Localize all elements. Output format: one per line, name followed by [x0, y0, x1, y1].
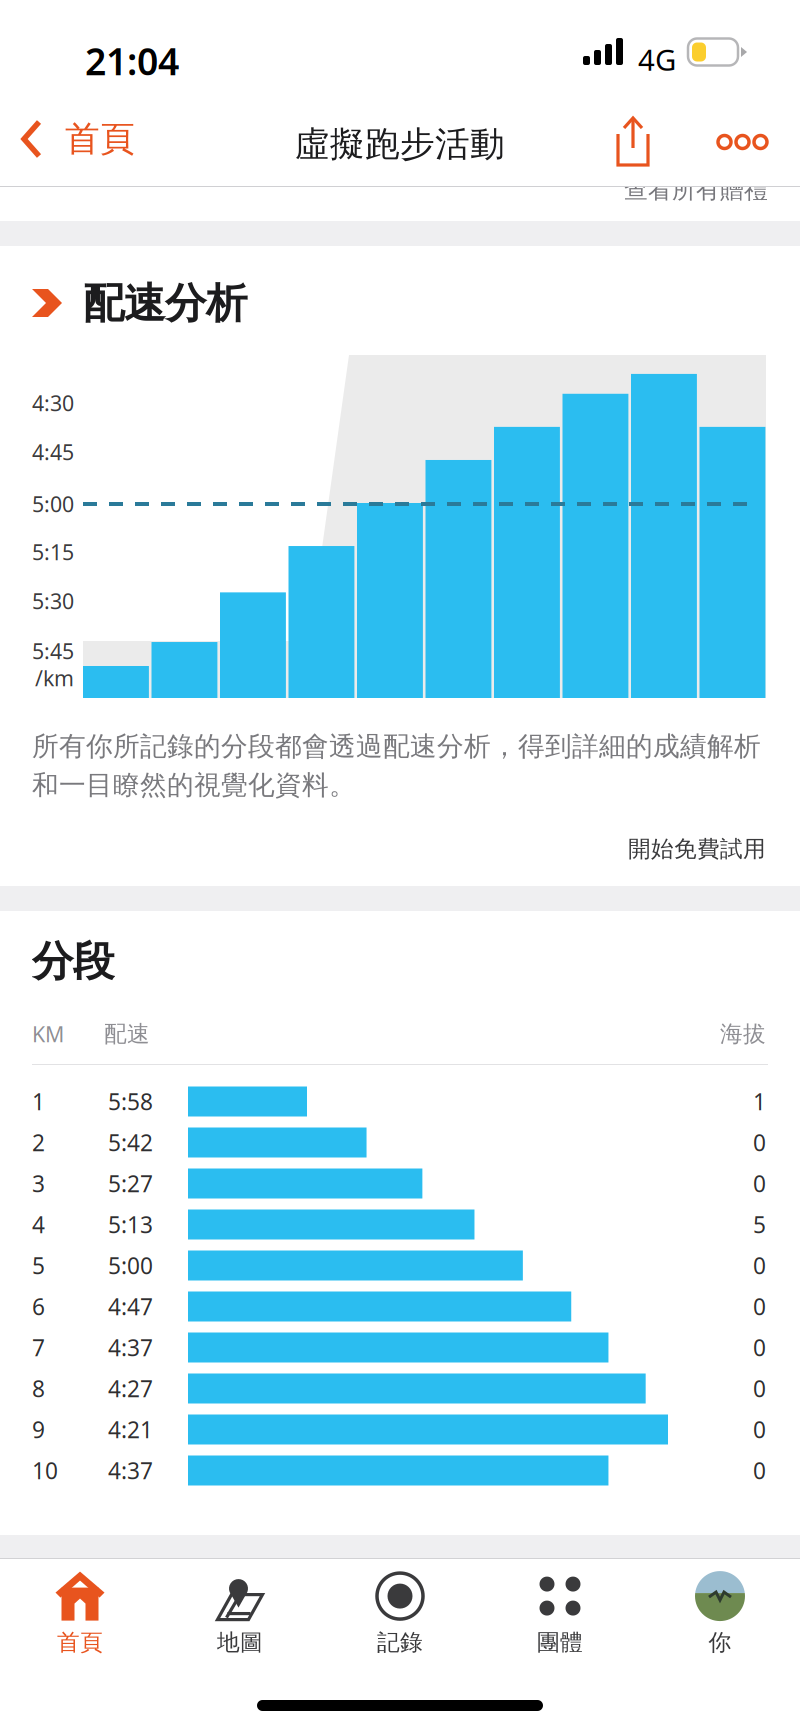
staticText: 5:27: [108, 1168, 153, 1198]
button[interactable]: 分享: [593, 99, 673, 185]
staticText: 4:37: [108, 1455, 153, 1485]
staticText: 4:27: [108, 1373, 153, 1403]
button[interactable]: 3: [0, 1163, 800, 1204]
staticText: 4:37: [108, 1332, 153, 1362]
button[interactable]: 2: [0, 1122, 800, 1163]
staticText: 6: [32, 1291, 45, 1321]
staticText: 7: [32, 1332, 45, 1362]
button[interactable]: 地圖: [160, 1564, 320, 1656]
button[interactable]: 5: [0, 1245, 800, 1286]
staticText: 5:13: [108, 1209, 153, 1239]
staticText: 你: [708, 1629, 731, 1656]
staticText: 4:21: [108, 1414, 153, 1444]
staticText: 地圖: [217, 1629, 263, 1656]
button[interactable]: 開始免費試用: [608, 823, 800, 875]
staticText: 4: [32, 1209, 45, 1239]
staticText: /km: [35, 664, 74, 692]
button[interactable]: 首頁: [0, 96, 153, 182]
staticText: 5:58: [108, 1086, 153, 1116]
staticText: 查看所有贈禮: [624, 175, 768, 204]
button[interactable]: 記錄: [320, 1564, 480, 1656]
staticText: 5:30: [32, 587, 74, 615]
staticText: 海拔: [720, 1020, 766, 1048]
staticText: 5: [32, 1250, 45, 1280]
staticText: 10: [32, 1455, 58, 1485]
button[interactable]: 1: [0, 1081, 800, 1122]
staticText: 首頁: [57, 1629, 103, 1656]
button[interactable]: 7: [0, 1327, 800, 1368]
staticText: 1: [753, 1086, 766, 1116]
staticText: 記錄: [377, 1629, 423, 1656]
staticText: 21:04: [85, 36, 179, 86]
button[interactable]: 你: [640, 1564, 800, 1656]
staticText: 4:30: [32, 389, 74, 417]
staticText: 0: [753, 1332, 766, 1362]
staticText: 5:00: [108, 1250, 153, 1280]
button[interactable]: 9: [0, 1409, 800, 1450]
button[interactable]: 8: [0, 1368, 800, 1409]
staticText: 配速: [104, 1020, 150, 1048]
button[interactable]: 首頁: [0, 1564, 160, 1656]
staticText: 9: [32, 1414, 45, 1444]
staticText: 團體: [537, 1629, 583, 1656]
button[interactable]: 更多: [697, 99, 788, 185]
staticText: 1: [32, 1086, 45, 1116]
button[interactable]: 團體: [480, 1564, 640, 1656]
staticText: 首頁: [65, 118, 135, 160]
button[interactable]: 6: [0, 1286, 800, 1327]
staticText: 0: [753, 1373, 766, 1403]
staticText: 5:42: [108, 1127, 153, 1157]
staticText: 配速分析: [83, 278, 247, 329]
staticText: 4G: [638, 40, 676, 79]
staticText: 8: [32, 1373, 45, 1403]
staticText: 2: [32, 1127, 45, 1157]
staticText: 5: [753, 1209, 766, 1239]
staticText: 所有你所記錄的分段都會透過配速分析，得到詳細的成績解析和一目瞭然的視覺化資料。: [32, 730, 761, 801]
staticText: 4:47: [108, 1291, 153, 1321]
staticText: 0: [753, 1168, 766, 1198]
staticText: 4:45: [32, 438, 74, 466]
staticText: 5:15: [32, 538, 74, 566]
staticText: 0: [753, 1414, 766, 1444]
staticText: 5:00: [32, 490, 74, 518]
staticText: 0: [753, 1455, 766, 1485]
staticText: 3: [32, 1168, 45, 1198]
button[interactable]: 4: [0, 1204, 800, 1245]
button[interactable]: 10: [0, 1450, 800, 1491]
staticText: 開始免費試用: [628, 835, 766, 863]
staticText: KM: [32, 1020, 64, 1048]
staticText: 0: [753, 1291, 766, 1321]
staticText: 虛擬跑步活動: [295, 123, 505, 166]
staticText: 0: [753, 1127, 766, 1157]
staticText: 0: [753, 1250, 766, 1280]
staticText: 5:45: [32, 637, 74, 665]
staticText: 分段: [32, 936, 114, 987]
